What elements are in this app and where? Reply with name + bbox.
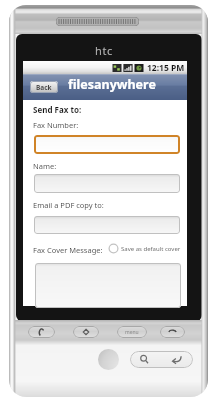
button[interactable]: Home	[73, 326, 99, 338]
button[interactable]: Menu	[117, 326, 147, 338]
staticText: filesanywhere	[68, 76, 156, 93]
button[interactable]: Search	[139, 354, 150, 365]
staticText: Fax Cover Message:	[33, 245, 103, 255]
button[interactable]	[34, 174, 180, 193]
button[interactable]	[34, 135, 180, 154]
staticText: Fax Number:	[33, 120, 79, 130]
staticText: Save as default cover	[121, 245, 181, 253]
button[interactable]: Back	[30, 81, 58, 93]
staticText: 12:15 PM	[147, 62, 185, 74]
button[interactable]: Call	[28, 326, 55, 338]
staticText: menu	[125, 329, 139, 336]
staticText: Back	[36, 83, 52, 92]
button[interactable]: End call	[160, 326, 185, 338]
staticText: Name:	[33, 161, 57, 171]
button[interactable]: Save as default cover	[108, 243, 181, 254]
staticText: Send Fax to:	[33, 104, 82, 115]
staticText: htc	[95, 43, 113, 58]
button[interactable]: Back	[171, 354, 182, 365]
staticText: Email a PDF copy to:	[33, 200, 104, 210]
button[interactable]	[34, 216, 180, 234]
button[interactable]	[35, 263, 181, 308]
button[interactable]: Trackball	[98, 349, 119, 370]
